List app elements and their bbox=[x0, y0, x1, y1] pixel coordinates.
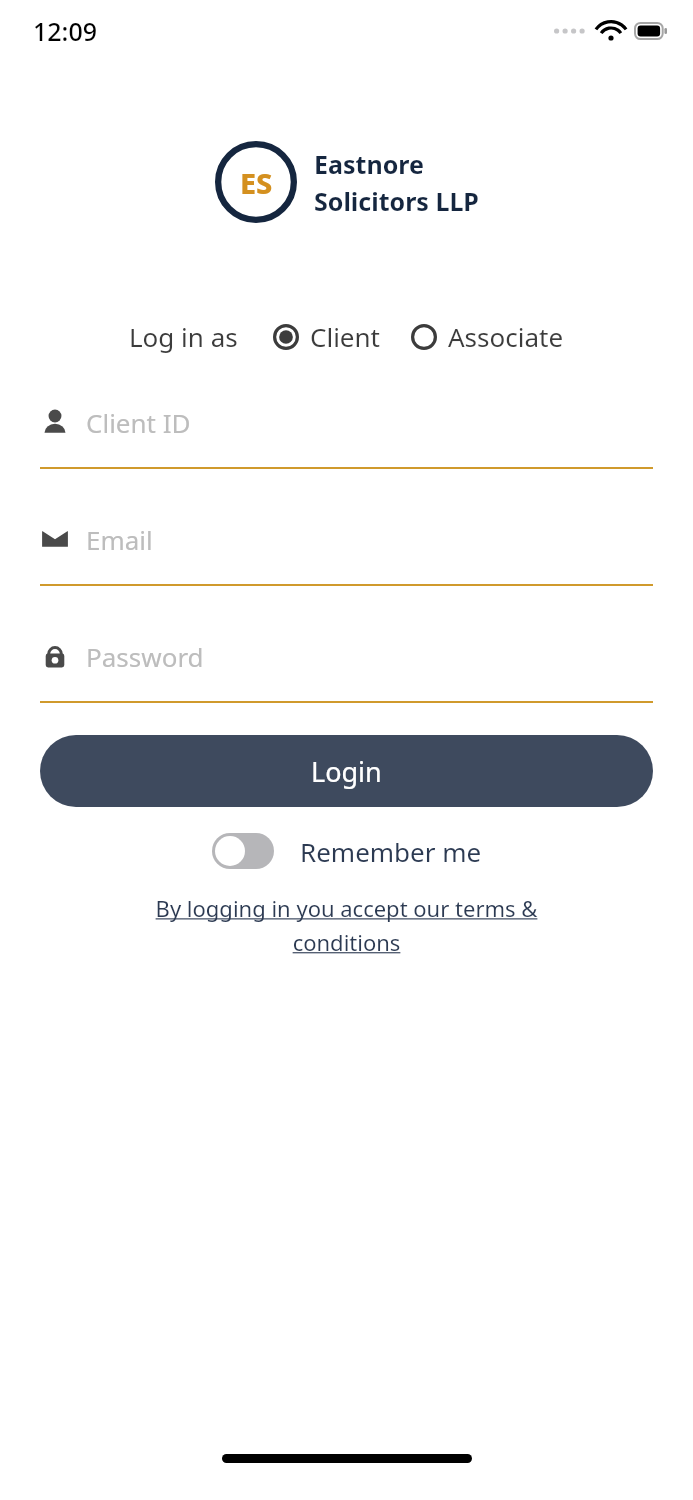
button[interactable]: Client ID field bbox=[40, 402, 653, 469]
button[interactable]: Login bbox=[40, 735, 653, 807]
staticText: By logging in you accept our terms & con… bbox=[100, 893, 593, 957]
staticText: Login bbox=[311, 753, 382, 790]
staticText: Remember me bbox=[300, 834, 482, 869]
staticText: Log in as bbox=[129, 319, 238, 354]
button[interactable]: Password field bbox=[40, 636, 653, 703]
staticText: Solicitors LLP bbox=[314, 184, 479, 218]
staticText: Client bbox=[310, 319, 380, 354]
button[interactable]: Client bbox=[272, 319, 380, 354]
staticText: Associate bbox=[448, 319, 564, 354]
staticText: Eastnore bbox=[314, 147, 424, 181]
button[interactable]: By logging in you accept our terms & con… bbox=[100, 893, 593, 957]
staticText: Email bbox=[86, 522, 153, 557]
staticText: Password bbox=[86, 639, 204, 674]
button[interactable]: Email field bbox=[40, 519, 653, 586]
staticText: 12:09 bbox=[33, 14, 98, 48]
staticText: ES bbox=[240, 163, 273, 202]
staticText: Client ID bbox=[86, 405, 191, 440]
other: Remember me toggle bbox=[212, 833, 274, 869]
button[interactable]: Remember me toggle bbox=[212, 833, 482, 869]
button[interactable]: Associate bbox=[410, 319, 564, 354]
